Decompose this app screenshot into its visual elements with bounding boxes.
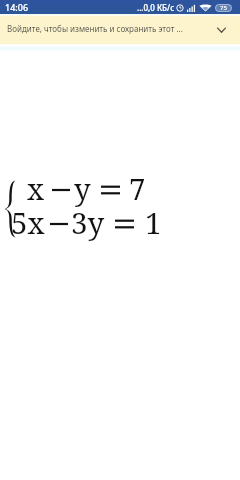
- staticText: y: [74, 173, 91, 207]
- staticText: ...0,0 КБ/с: [137, 2, 175, 13]
- staticText: 14:06: [5, 1, 29, 13]
- staticText: 3y: [71, 207, 105, 241]
- button[interactable]: Войдите, чтобы изменить и сохранить этот…: [0, 16, 240, 44]
- staticText: 7: [129, 173, 146, 207]
- staticText: Войдите, чтобы изменить и сохранить этот…: [7, 23, 206, 34]
- staticText: 75: [220, 4, 227, 12]
- staticText: 1: [145, 207, 162, 241]
- staticText: x: [27, 173, 45, 207]
- staticText: 5x: [11, 207, 45, 241]
- button[interactable]: Expand banner: [210, 19, 232, 41]
